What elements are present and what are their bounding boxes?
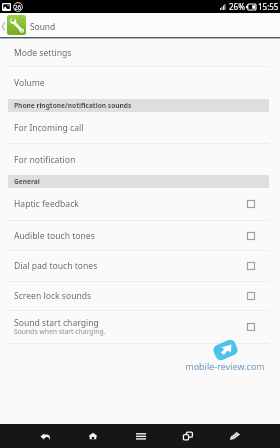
staticText: For notification bbox=[14, 154, 76, 166]
button[interactable]: Edit bbox=[211, 424, 258, 448]
staticText: Sound bbox=[30, 21, 56, 32]
staticText: Phone ringtone/notification sounds bbox=[14, 101, 132, 110]
button[interactable]: Mode settings bbox=[0, 39, 280, 66]
button[interactable]: Audible touch tones bbox=[0, 221, 280, 250]
button[interactable]: Dial pad touch tones bbox=[0, 251, 280, 281]
button[interactable]: Volume bbox=[0, 67, 280, 99]
staticText: Haptic feedback bbox=[14, 198, 79, 210]
button[interactable]: Recent apps bbox=[164, 424, 211, 448]
staticText: Sounds when start charging. bbox=[14, 327, 106, 336]
button[interactable]: Back bbox=[21, 424, 69, 448]
staticText: Sound start charging bbox=[14, 317, 99, 329]
button[interactable]: For Incoming call bbox=[0, 112, 280, 143]
staticText: Volume bbox=[14, 77, 45, 89]
staticText: Screen lock sounds bbox=[14, 290, 92, 302]
staticText: Mode settings bbox=[14, 47, 72, 59]
staticText: Dial pad touch tones bbox=[14, 260, 98, 272]
button[interactable]: Navigate up bbox=[0, 13, 26, 39]
staticText: For Incoming call bbox=[14, 122, 84, 134]
staticText: 15:55 bbox=[258, 1, 279, 12]
button[interactable]: Menu bbox=[117, 424, 164, 448]
staticText: General bbox=[14, 177, 40, 186]
staticText: 26% bbox=[229, 1, 245, 12]
button[interactable]: Home bbox=[69, 424, 117, 448]
button[interactable]: For notification bbox=[0, 144, 280, 175]
button[interactable]: Screen lock sounds bbox=[0, 282, 280, 310]
staticText: mobile-review.com bbox=[185, 360, 265, 372]
staticText: Audible touch tones bbox=[14, 230, 95, 242]
staticText: 26 bbox=[14, 3, 22, 11]
button[interactable]: Haptic feedback bbox=[0, 188, 280, 220]
button[interactable]: Sound start charging bbox=[0, 311, 280, 343]
